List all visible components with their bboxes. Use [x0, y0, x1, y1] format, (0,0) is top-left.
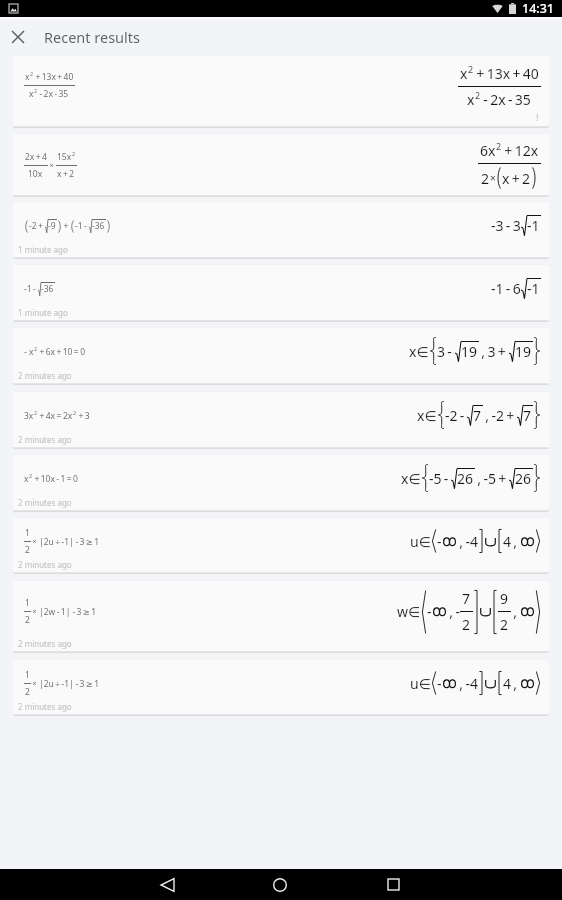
staticText: 2 minutes ago	[18, 638, 72, 649]
staticText: -36	[41, 283, 54, 295]
staticText: 2 minutes ago	[18, 559, 72, 570]
staticText: 1	[25, 669, 30, 681]
staticText: -1	[527, 216, 540, 235]
staticText: 2	[34, 345, 38, 352]
button[interactable]: Home	[264, 869, 295, 900]
button[interactable]: x	[13, 454, 549, 512]
staticText: 2	[481, 169, 490, 188]
staticText: 9	[500, 589, 509, 608]
staticText: |2u ÷ -1|	[39, 678, 74, 690]
staticText: 2	[73, 409, 77, 416]
staticText: 2	[25, 544, 30, 556]
staticText: + 4x =	[38, 410, 63, 422]
staticText: , 3 +	[479, 342, 509, 361]
staticText: 4 ,	[503, 674, 520, 693]
staticText: 19	[515, 342, 532, 361]
staticText: 7	[473, 406, 482, 425]
staticText: x	[24, 473, 29, 485]
staticText: 7	[462, 589, 471, 608]
button[interactable]: Recents	[378, 869, 409, 900]
staticText: u∈	[410, 532, 431, 551]
staticText: -1 - 6	[491, 279, 521, 298]
staticText: -1 -	[75, 220, 89, 232]
staticText: - 3 ≥ 1	[71, 606, 97, 618]
staticText: 2	[468, 63, 474, 75]
staticText: , -4	[457, 674, 478, 693]
staticText: + 12x	[502, 141, 539, 160]
staticText: ×	[31, 606, 39, 617]
staticText: |2w - 1|	[39, 606, 71, 618]
staticText: 1 minute ago	[18, 244, 68, 255]
button[interactable]: -1 -	[13, 264, 549, 322]
staticText: x∈	[417, 406, 437, 425]
staticText: x	[460, 64, 468, 83]
staticText: w∈	[397, 602, 421, 621]
staticText: -3 - 3	[491, 216, 521, 235]
staticText: 2 minutes ago	[18, 370, 72, 381]
staticText: 2	[475, 89, 481, 101]
staticText: 2	[500, 615, 509, 634]
staticText: 2 minutes ago	[18, 434, 72, 445]
staticText: x + 2	[57, 168, 75, 180]
staticText: 2	[34, 409, 38, 416]
staticText: -	[437, 674, 442, 693]
staticText: +	[62, 220, 70, 232]
staticText: x	[25, 71, 30, 83]
staticText: x	[467, 90, 475, 109]
staticText: -1	[527, 279, 540, 298]
staticText: 2	[29, 472, 33, 479]
staticText: + 13x + 40	[34, 71, 74, 83]
staticText: 3 -	[437, 342, 455, 361]
staticText: 2	[34, 87, 38, 94]
staticText: 2	[72, 150, 76, 157]
staticText: - 2x - 35	[481, 90, 531, 109]
staticText: ×	[31, 536, 39, 547]
staticText: -	[24, 346, 29, 358]
staticText: 1	[25, 597, 30, 609]
staticText: x	[29, 88, 34, 100]
staticText: -	[437, 532, 442, 551]
staticText: 1	[25, 527, 30, 539]
staticText: 2x + 4	[25, 151, 47, 163]
staticText: 2 minutes ago	[18, 701, 72, 712]
staticText: , -5 +	[475, 469, 509, 488]
staticText: 2	[25, 686, 30, 698]
staticText: ×	[48, 160, 56, 171]
button[interactable]: 3x	[13, 391, 549, 449]
staticText: x + 2	[502, 169, 531, 188]
staticText: -1 -	[24, 283, 38, 295]
button[interactable]: x	[13, 55, 549, 128]
button[interactable]: 1	[13, 517, 549, 574]
staticText: x	[29, 346, 34, 358]
button[interactable]: 2x + 4	[13, 133, 549, 197]
staticText: -9	[48, 220, 56, 232]
button[interactable]: Back	[152, 869, 183, 900]
staticText: - 3 ≥ 1	[74, 678, 100, 690]
staticText: 2 minutes ago	[18, 497, 72, 508]
staticText: - 3 ≥ 1	[74, 536, 100, 548]
button[interactable]: Close	[0, 19, 36, 55]
staticText: + 3	[77, 410, 90, 422]
button[interactable]: 1	[13, 659, 549, 716]
staticText: ,	[511, 602, 520, 621]
staticText: ×	[490, 171, 496, 185]
staticText: + 13x + 40	[474, 64, 539, 83]
staticText: u∈	[410, 674, 431, 693]
staticText: 3x	[24, 410, 34, 422]
button[interactable]: -	[13, 327, 549, 385]
staticText: |2u ÷ -1|	[39, 536, 74, 548]
staticText: 4 ,	[503, 532, 520, 551]
staticText: 2x	[63, 410, 73, 422]
staticText: , -	[447, 602, 460, 621]
staticText: -5 -	[429, 469, 451, 488]
button[interactable]: -2 +	[13, 201, 549, 259]
staticText: x∈	[409, 342, 429, 361]
staticText: - 2x - 35	[38, 88, 69, 100]
staticText: Recent results	[44, 27, 141, 47]
button[interactable]: 1	[13, 580, 549, 653]
staticText: + 10x - 1 = 0	[33, 473, 78, 485]
staticText: 1 minute ago	[18, 307, 68, 318]
staticText: 2	[30, 70, 34, 77]
staticText: 19	[461, 342, 478, 361]
staticText: -36	[92, 220, 105, 232]
